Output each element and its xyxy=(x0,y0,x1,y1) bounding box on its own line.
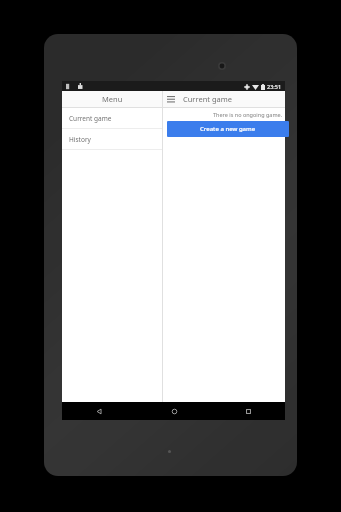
button[interactable]: Home xyxy=(137,402,211,420)
staticText: Menu xyxy=(102,94,123,104)
staticText: Create a new game xyxy=(200,125,256,133)
button[interactable]: History xyxy=(62,129,162,149)
staticText: Current game xyxy=(183,94,233,104)
staticText: There is no ongoing game. xyxy=(213,111,283,118)
staticText: Current game xyxy=(69,114,112,123)
button[interactable]: Create a new game xyxy=(167,121,289,137)
staticText: History xyxy=(69,135,91,144)
button[interactable]: Current game xyxy=(62,108,162,128)
button[interactable]: Open navigation drawer xyxy=(163,91,179,107)
staticText: 23:51 xyxy=(267,83,282,90)
button[interactable]: Recent apps xyxy=(211,402,285,420)
button[interactable]: Back xyxy=(62,402,137,420)
